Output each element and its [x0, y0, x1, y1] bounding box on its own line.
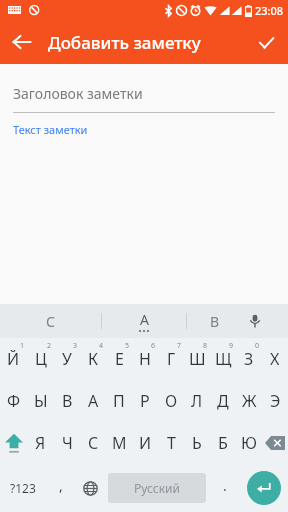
- staticText: А: [140, 310, 149, 329]
- staticText: С: [88, 432, 99, 454]
- button[interactable]: Я: [27, 422, 54, 464]
- staticText: Й: [7, 348, 20, 370]
- staticText: Щ: [215, 348, 232, 370]
- button[interactable]: Е: [106, 338, 132, 380]
- button[interactable]: А: [102, 304, 186, 338]
- button[interactable]: С: [80, 422, 106, 464]
- button[interactable]: В: [54, 380, 80, 422]
- button[interactable]: ?123: [0, 464, 46, 512]
- button[interactable]: Б: [210, 422, 236, 464]
- button[interactable]: А: [80, 380, 106, 422]
- staticText: Я: [35, 432, 46, 454]
- button[interactable]: Л: [184, 380, 210, 422]
- staticText: П: [113, 390, 125, 412]
- button[interactable]: У: [54, 338, 80, 380]
- button[interactable]: В: [187, 304, 288, 338]
- staticText: Ж: [242, 390, 257, 412]
- button[interactable]: Ы: [27, 380, 54, 422]
- staticText: И: [139, 432, 152, 454]
- button[interactable]: Сменить язык: [76, 464, 104, 512]
- staticText: 23:08: [255, 3, 284, 18]
- button[interactable]: Т: [158, 422, 184, 464]
- staticText: Ю: [241, 432, 257, 454]
- button[interactable]: О: [158, 380, 184, 422]
- staticText: 7: [177, 341, 182, 351]
- button[interactable]: П: [106, 380, 132, 422]
- button[interactable]: ,: [46, 464, 76, 512]
- staticText: 4: [99, 341, 104, 351]
- staticText: ,: [59, 476, 63, 495]
- button[interactable]: Ввод: [240, 464, 288, 512]
- staticText: Б: [218, 432, 228, 454]
- staticText: М: [112, 432, 127, 454]
- staticText: Текст заметки: [13, 122, 88, 137]
- button[interactable]: З: [236, 338, 262, 380]
- button[interactable]: Сохранить: [244, 20, 288, 64]
- button[interactable]: Э: [262, 380, 288, 422]
- staticText: Н: [139, 348, 151, 370]
- staticText: 6: [151, 341, 156, 351]
- button[interactable]: Заголовок заметки: [13, 84, 275, 103]
- staticText: Э: [270, 390, 281, 412]
- staticText: 5: [125, 341, 130, 351]
- staticText: О: [165, 390, 178, 412]
- staticText: К: [88, 348, 99, 370]
- staticText: Добавить заметку: [48, 31, 201, 54]
- staticText: Ц: [35, 348, 47, 370]
- staticText: 1: [20, 341, 25, 351]
- staticText: Ф: [7, 390, 21, 412]
- staticText: 8: [203, 341, 208, 351]
- button[interactable]: Ш: [184, 338, 210, 380]
- button[interactable]: Щ: [210, 338, 236, 380]
- button[interactable]: Русский: [108, 473, 206, 503]
- staticText: Л: [191, 390, 203, 412]
- staticText: 3: [73, 341, 78, 351]
- button[interactable]: К: [80, 338, 106, 380]
- button[interactable]: Ю: [236, 422, 262, 464]
- button[interactable]: Ж: [236, 380, 262, 422]
- staticText: А: [88, 390, 99, 412]
- button[interactable]: Х: [262, 338, 288, 380]
- staticText: .: [223, 476, 227, 495]
- staticText: Г: [167, 348, 176, 370]
- staticText: С: [46, 312, 55, 331]
- button[interactable]: М: [106, 422, 132, 464]
- staticText: Ш: [189, 348, 206, 370]
- button[interactable]: Р: [132, 380, 158, 422]
- button[interactable]: С: [0, 304, 101, 338]
- staticText: Заголовок заметки: [13, 84, 143, 103]
- staticText: Ь: [192, 432, 202, 454]
- staticText: Т: [167, 432, 176, 454]
- staticText: В: [210, 312, 220, 331]
- staticText: Х: [270, 348, 280, 370]
- button[interactable]: Ц: [27, 338, 54, 380]
- button[interactable]: Н: [132, 338, 158, 380]
- staticText: Ы: [34, 390, 48, 412]
- button[interactable]: Ь: [184, 422, 210, 464]
- button[interactable]: Г: [158, 338, 184, 380]
- staticText: 9: [229, 341, 234, 351]
- button[interactable]: Голосовой ввод: [244, 310, 266, 332]
- staticText: Р: [140, 390, 150, 412]
- staticText: Русский: [134, 480, 180, 496]
- staticText: У: [62, 348, 72, 370]
- button[interactable]: Ф: [0, 380, 27, 422]
- button[interactable]: Shift: [0, 422, 27, 464]
- button[interactable]: Ч: [54, 422, 80, 464]
- staticText: 2: [47, 341, 52, 351]
- staticText: В: [62, 390, 73, 412]
- button[interactable]: Текст заметки: [13, 122, 275, 137]
- staticText: ?123: [10, 480, 36, 496]
- button[interactable]: И: [132, 422, 158, 464]
- staticText: З: [244, 348, 254, 370]
- button[interactable]: Назад: [0, 20, 44, 64]
- staticText: Е: [115, 348, 124, 370]
- button[interactable]: Й: [0, 338, 27, 380]
- button[interactable]: .: [210, 464, 240, 512]
- button[interactable]: Д: [210, 380, 236, 422]
- staticText: 0: [255, 341, 260, 351]
- button[interactable]: Удалить: [262, 422, 288, 464]
- staticText: Ч: [62, 432, 73, 454]
- staticText: Д: [217, 390, 229, 412]
